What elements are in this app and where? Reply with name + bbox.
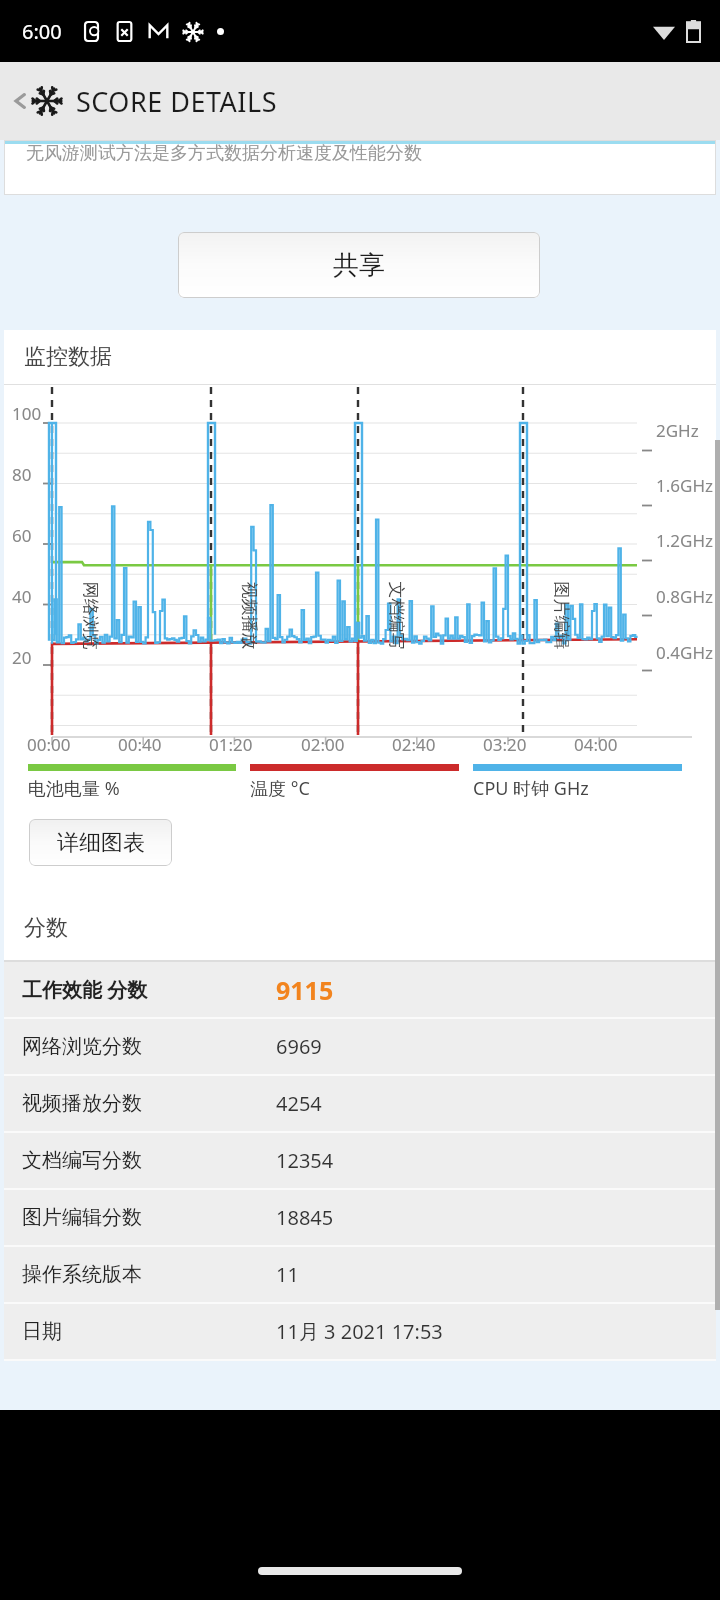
staticText: 温度 °C bbox=[250, 776, 310, 801]
staticText: 12354 bbox=[276, 1147, 334, 1174]
staticText: 文档编写分数 bbox=[22, 1148, 142, 1173]
staticText: 04:00 bbox=[574, 733, 618, 756]
staticText: 详细图表 bbox=[57, 829, 145, 857]
staticText: 监控数据 bbox=[24, 343, 112, 371]
staticText: 视频播放分数 bbox=[22, 1091, 142, 1116]
button[interactable]: Back bbox=[0, 62, 720, 140]
staticText: CPU 时钟 GHz bbox=[473, 776, 589, 801]
staticText: 03:20 bbox=[483, 733, 527, 756]
staticText: 11 bbox=[276, 1261, 299, 1288]
staticText: 00:00 bbox=[27, 733, 71, 756]
staticText: 6969 bbox=[276, 1033, 322, 1060]
button[interactable]: 图片编辑分数 bbox=[4, 1190, 716, 1245]
staticText: 无风游测试方法是多方式数据分析速度及性能分数 bbox=[26, 142, 422, 165]
staticText: 工作效能 分数 bbox=[22, 976, 148, 1003]
staticText: 01:20 bbox=[209, 733, 253, 756]
staticText: 6:00 bbox=[22, 18, 62, 45]
staticText: 4254 bbox=[276, 1090, 322, 1117]
staticText: 日期 bbox=[22, 1319, 62, 1344]
staticText: 网络浏览分数 bbox=[22, 1034, 142, 1059]
button[interactable]: 视频播放分数 bbox=[4, 1076, 716, 1131]
staticText: 20 bbox=[12, 646, 32, 669]
staticText: 80 bbox=[12, 463, 32, 486]
staticText: 电池电量 % bbox=[28, 776, 120, 801]
button[interactable]: 工作效能 分数 bbox=[4, 962, 716, 1017]
staticText: 操作系统版本 bbox=[22, 1262, 142, 1287]
button[interactable]: 共享 bbox=[178, 232, 540, 298]
staticText: 100 bbox=[12, 402, 42, 425]
staticText: 0.8GHz bbox=[656, 585, 713, 608]
button[interactable]: 文档编写分数 bbox=[4, 1133, 716, 1188]
button[interactable]: 操作系统版本 bbox=[4, 1247, 716, 1302]
staticText: 文档编写 bbox=[385, 581, 406, 649]
button[interactable]: 详细图表 bbox=[29, 819, 172, 866]
staticText: 0.4GHz bbox=[656, 641, 713, 664]
staticText: 02:00 bbox=[301, 733, 345, 756]
staticText: 00:40 bbox=[118, 733, 162, 756]
staticText: 共享 bbox=[333, 249, 385, 282]
staticText: 60 bbox=[12, 524, 32, 547]
staticText: 18845 bbox=[276, 1204, 334, 1231]
staticText: 网络浏览 bbox=[79, 581, 100, 649]
staticText: 1.2GHz bbox=[656, 529, 713, 552]
staticText: 02:40 bbox=[392, 733, 436, 756]
staticText: 分数 bbox=[24, 914, 68, 942]
staticText: 视频播放 bbox=[238, 581, 259, 649]
staticText: 9115 bbox=[276, 973, 334, 1007]
other: Back bbox=[10, 91, 30, 111]
staticText: 1.6GHz bbox=[656, 474, 713, 497]
staticText: 图片编辑 bbox=[550, 581, 571, 649]
staticText: 40 bbox=[12, 585, 32, 608]
staticText: 2GHz bbox=[656, 419, 699, 442]
button[interactable]: 日期 bbox=[4, 1304, 716, 1359]
staticText: 11月 3 2021 17:53 bbox=[276, 1318, 443, 1345]
staticText: SCORE DETAILS bbox=[76, 83, 277, 120]
button[interactable]: 网络浏览分数 bbox=[4, 1019, 716, 1074]
staticText: 图片编辑分数 bbox=[22, 1205, 142, 1230]
